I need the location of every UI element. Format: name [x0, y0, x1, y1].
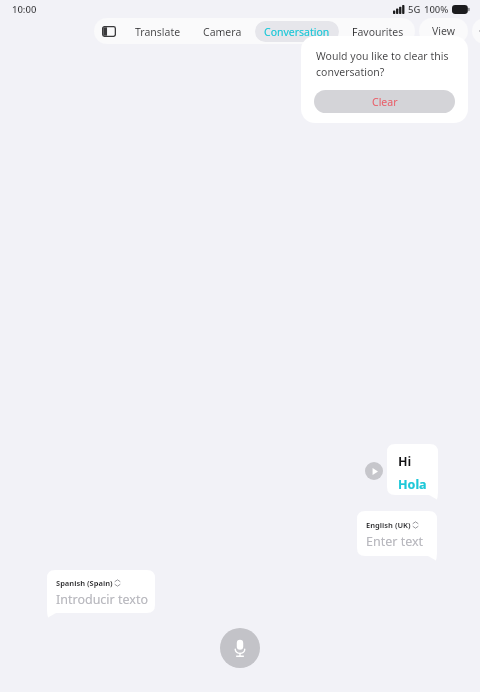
staticText: Translate: [135, 25, 181, 39]
staticText: Hi: [398, 453, 412, 470]
staticText: conversation?: [316, 65, 385, 79]
button[interactable]: Favourites: [343, 21, 413, 42]
button[interactable]: Clear: [314, 90, 455, 113]
staticText: English (UK): [366, 520, 411, 530]
staticText: View: [432, 24, 455, 38]
staticText: Favourites: [352, 25, 404, 39]
staticText: Enter text: [366, 533, 424, 550]
button[interactable]: English (UK): [357, 511, 437, 561]
staticText: Spanish (Spain): [56, 578, 113, 588]
button[interactable]: More options: [472, 18, 480, 44]
staticText: Clear: [372, 95, 398, 109]
button[interactable]: View: [419, 18, 468, 44]
staticText: Camera: [203, 25, 242, 39]
button[interactable]: Conversation: [255, 21, 339, 42]
button[interactable]: Play translation: [365, 462, 383, 480]
button[interactable]: Translate: [126, 21, 190, 42]
staticText: Conversation: [264, 25, 330, 39]
button[interactable]: Sidebar: [94, 18, 124, 44]
staticText: 5G: [408, 3, 421, 16]
staticText: 10:00: [12, 3, 37, 16]
staticText: Introducir texto: [56, 591, 149, 608]
button[interactable]: Microphone: [220, 628, 260, 668]
staticText: 100%: [424, 3, 449, 16]
button[interactable]: Hi: [387, 444, 438, 500]
staticText: Hola: [398, 476, 427, 493]
button[interactable]: Spanish (Spain): [47, 570, 155, 618]
button[interactable]: Camera: [194, 21, 251, 42]
staticText: Would you like to clear this: [316, 49, 449, 63]
